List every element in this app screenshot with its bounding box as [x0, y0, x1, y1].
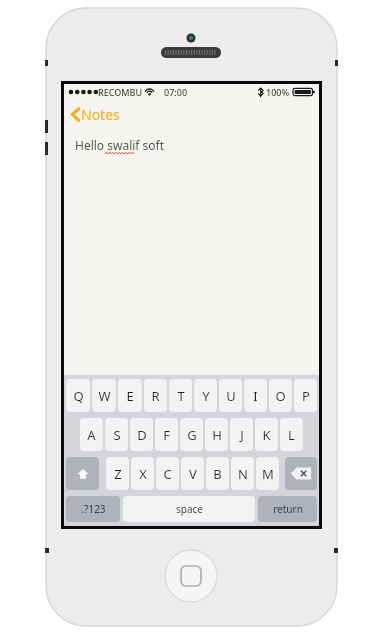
staticText: M: [262, 465, 274, 483]
staticText: W: [98, 387, 111, 405]
staticText: O: [275, 387, 286, 405]
button[interactable]: Q: [66, 379, 90, 412]
staticText: Notes: [81, 105, 120, 124]
button[interactable]: U: [219, 379, 242, 412]
button[interactable]: R: [144, 379, 167, 412]
button[interactable]: Notes: [69, 103, 122, 126]
button[interactable]: M: [256, 457, 279, 490]
button[interactable]: .?123: [66, 496, 120, 522]
button[interactable]: Shift: [66, 457, 99, 490]
button[interactable]: Z: [106, 457, 129, 490]
button[interactable]: K: [255, 418, 278, 451]
button[interactable]: W: [92, 379, 116, 412]
staticText: I: [253, 387, 258, 405]
staticText: G: [187, 426, 197, 444]
staticText: B: [213, 465, 222, 483]
staticText: T: [177, 387, 185, 405]
staticText: A: [87, 426, 96, 444]
staticText: V: [189, 465, 197, 483]
button[interactable]: F: [155, 418, 178, 451]
button[interactable]: S: [105, 418, 128, 451]
staticText: E: [126, 387, 134, 405]
button[interactable]: T: [169, 379, 192, 412]
staticText: .?123: [81, 502, 106, 516]
staticText: K: [262, 426, 271, 444]
button[interactable]: V: [181, 457, 204, 490]
staticText: L: [288, 426, 295, 444]
staticText: Z: [114, 465, 122, 483]
button[interactable]: I: [244, 379, 267, 412]
staticText: D: [137, 426, 147, 444]
staticText: space: [176, 502, 203, 516]
button[interactable]: return: [258, 496, 317, 522]
button[interactable]: Backspace: [285, 457, 317, 490]
button[interactable]: X: [131, 457, 154, 490]
button[interactable]: O: [269, 379, 292, 412]
staticText: R: [151, 387, 160, 405]
staticText: H: [212, 426, 222, 444]
staticText: Y: [202, 387, 210, 405]
button[interactable]: D: [130, 418, 153, 451]
button[interactable]: B: [206, 457, 229, 490]
staticText: X: [139, 465, 147, 483]
button[interactable]: L: [280, 418, 303, 451]
staticText: J: [240, 426, 244, 444]
staticText: RECOMBU: [98, 86, 143, 98]
button[interactable]: E: [118, 379, 142, 412]
staticText: C: [163, 465, 172, 483]
button[interactable]: space: [123, 496, 255, 522]
staticText: Hello swalif soft: [75, 137, 165, 153]
button[interactable]: A: [80, 418, 103, 451]
staticText: return: [273, 502, 303, 516]
button[interactable]: G: [180, 418, 203, 451]
staticText: P: [302, 387, 310, 405]
button[interactable]: P: [294, 379, 317, 412]
staticText: F: [163, 426, 170, 444]
button[interactable]: H: [205, 418, 228, 451]
staticText: 100%: [266, 86, 290, 98]
staticText: N: [238, 465, 248, 483]
staticText: S: [113, 426, 121, 444]
staticText: U: [226, 387, 236, 405]
staticText: 07:00: [164, 86, 188, 98]
button[interactable]: Y: [194, 379, 217, 412]
button[interactable]: N: [231, 457, 254, 490]
staticText: Q: [73, 387, 84, 405]
button[interactable]: C: [156, 457, 179, 490]
button[interactable]: J: [230, 418, 253, 451]
